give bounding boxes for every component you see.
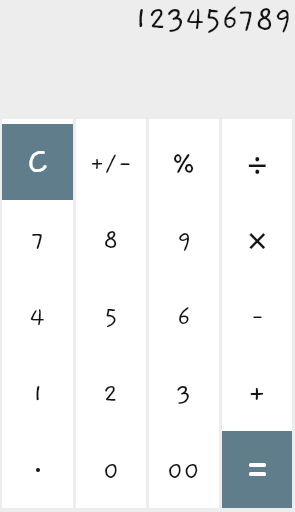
button[interactable]: 8 [76, 200, 146, 277]
staticText: 1 [32, 380, 44, 409]
staticText: 00 [167, 457, 201, 486]
staticText: 8 [103, 226, 119, 255]
staticText: 4 [29, 303, 46, 332]
staticText: ÷ [247, 140, 268, 189]
staticText: 3 [176, 380, 192, 409]
staticText: 123456789 [134, 2, 293, 37]
button[interactable]: 1 [2, 354, 73, 431]
staticText: C [27, 142, 49, 182]
staticText: 7 [31, 226, 45, 255]
button[interactable]: 00 [149, 431, 219, 508]
button[interactable]: 9 [149, 200, 219, 277]
staticText: 2 [103, 380, 119, 409]
staticText: 0 [103, 457, 120, 486]
button[interactable]: - [222, 277, 292, 354]
button[interactable]: 4 [2, 277, 73, 354]
staticText: × [247, 216, 268, 265]
staticText: 9 [177, 226, 192, 255]
staticText: + [247, 379, 267, 411]
button[interactable]: C [2, 124, 73, 200]
button[interactable] [222, 431, 292, 508]
staticText: - [250, 306, 265, 330]
staticText: +/- [89, 151, 134, 177]
button[interactable]: × [222, 200, 292, 277]
button[interactable]: 6 [149, 277, 219, 354]
staticText: 6 [177, 303, 191, 332]
button[interactable]: 2 [76, 354, 146, 431]
staticText: 5 [104, 303, 119, 332]
staticText: % [171, 148, 197, 181]
button[interactable]: % [149, 124, 219, 200]
button[interactable]: + [222, 354, 292, 431]
button[interactable]: 3 [149, 354, 219, 431]
button[interactable]: 7 [2, 200, 73, 277]
button[interactable]: 0 [76, 431, 146, 508]
button[interactable]: ÷ [222, 124, 292, 200]
button[interactable] [2, 431, 73, 508]
button[interactable]: 5 [76, 277, 146, 354]
button[interactable]: +/- [76, 124, 146, 200]
